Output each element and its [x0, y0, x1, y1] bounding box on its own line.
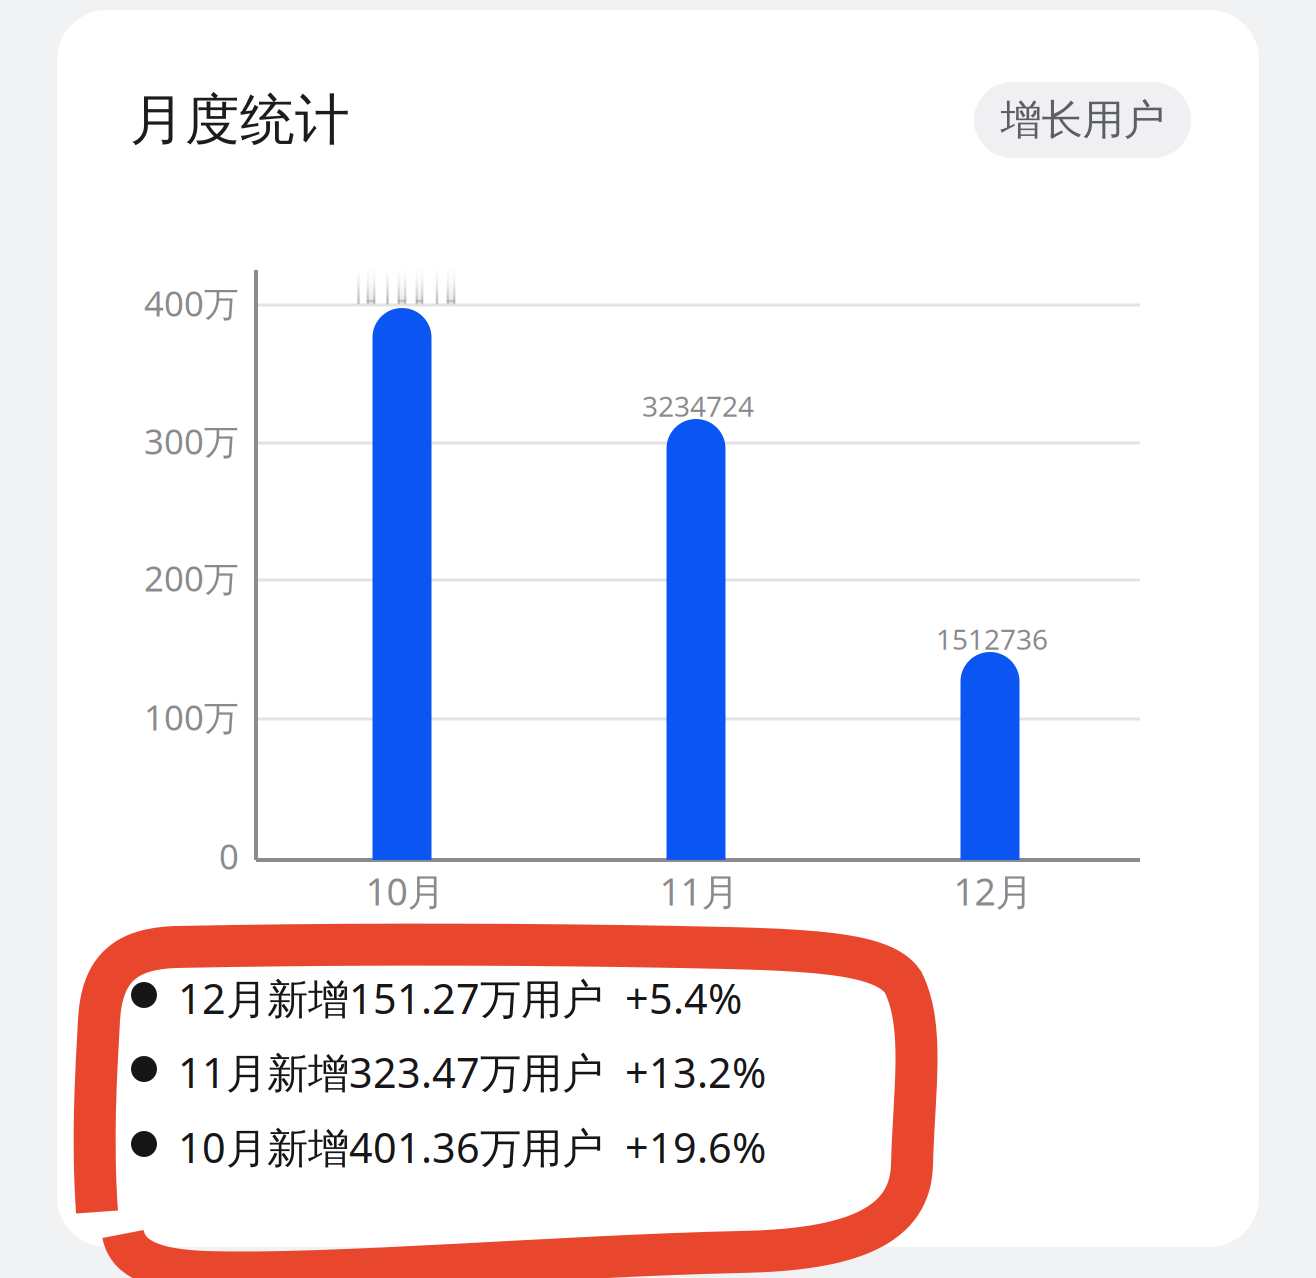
staticText: 10月	[365, 866, 444, 916]
staticText: 0	[219, 833, 239, 879]
staticText: 100万	[144, 694, 239, 740]
staticText: 300万	[144, 418, 239, 464]
staticText: 200万	[144, 555, 239, 601]
staticText: 1512736	[936, 620, 1048, 658]
staticText: 11月新增323.47万用户 +13.2%	[178, 1045, 766, 1099]
staticText: 400万	[144, 280, 239, 326]
staticText: 10月新增401.36万用户 +19.6%	[178, 1120, 766, 1174]
staticText: 3234724	[642, 387, 754, 425]
staticText: 12月新增151.27万用户 +5.4%	[178, 971, 742, 1025]
button[interactable]: 增长用户	[974, 82, 1191, 158]
staticText: 增长用户	[1000, 95, 1164, 145]
staticText: 12月	[953, 866, 1032, 916]
staticText: 11月	[659, 866, 738, 916]
staticText: 月度统计	[130, 86, 350, 153]
